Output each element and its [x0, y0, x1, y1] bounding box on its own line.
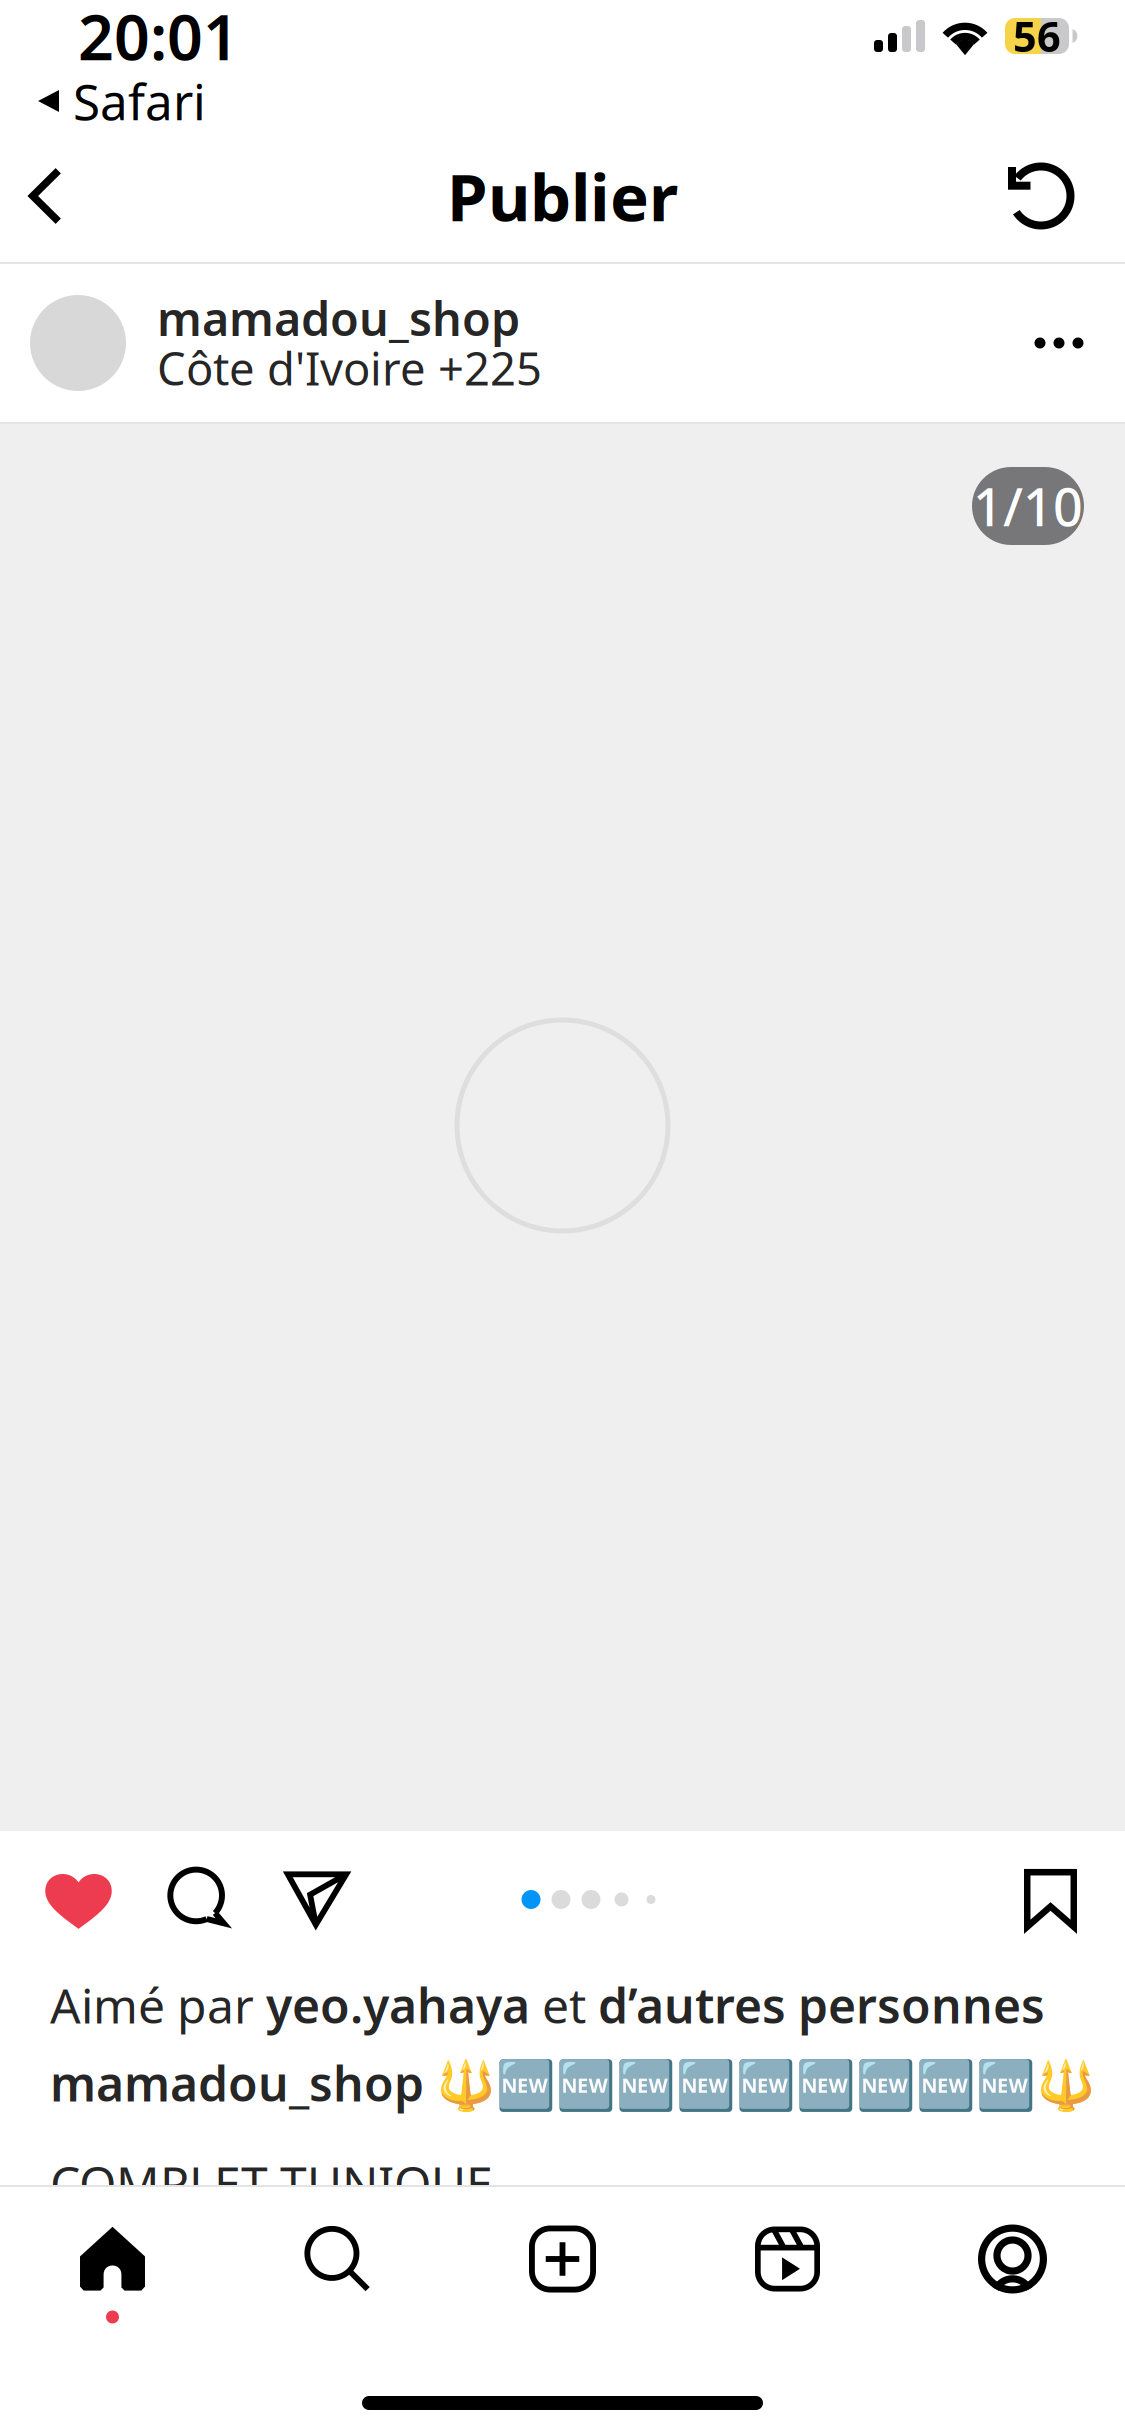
staticText: Aimé par yeo.yahaya et d’autres personne…	[50, 1973, 1045, 2037]
button[interactable]: Profile	[900, 2187, 1125, 2351]
staticText: Publier	[447, 153, 678, 239]
staticText: COMPLET TUNIQUE	[50, 2151, 493, 2215]
staticText: 20:01	[78, 0, 239, 78]
button[interactable]: Home	[0, 2187, 225, 2351]
button[interactable]: Photo 1 of 10	[972, 467, 1084, 545]
button[interactable]: More options	[1014, 283, 1104, 403]
button[interactable]: Refresh	[981, 130, 1101, 262]
button[interactable]: Unlike	[17, 1831, 140, 1962]
button[interactable]: New post	[450, 2187, 675, 2351]
staticText: Safari	[73, 68, 206, 134]
button[interactable]: Reels	[675, 2187, 900, 2351]
button[interactable]: Back to Safari	[0, 77, 283, 125]
staticText: mamadou_shop 🔱🆕🆕🆕🆕🆕🆕🆕🆕🆕🔱	[50, 2051, 1096, 2115]
staticText: mamadou_shop	[157, 287, 520, 349]
staticText: Côte d'Ivoire +225	[157, 338, 542, 398]
button[interactable]: Comment	[140, 1831, 258, 1962]
staticText: 56	[1013, 9, 1061, 63]
button[interactable]: Search	[225, 2187, 450, 2351]
button[interactable]: Back	[0, 130, 90, 262]
staticText: 1/10	[973, 471, 1083, 541]
button[interactable]: Share	[258, 1831, 376, 1962]
button[interactable]: Save	[994, 1831, 1107, 1962]
